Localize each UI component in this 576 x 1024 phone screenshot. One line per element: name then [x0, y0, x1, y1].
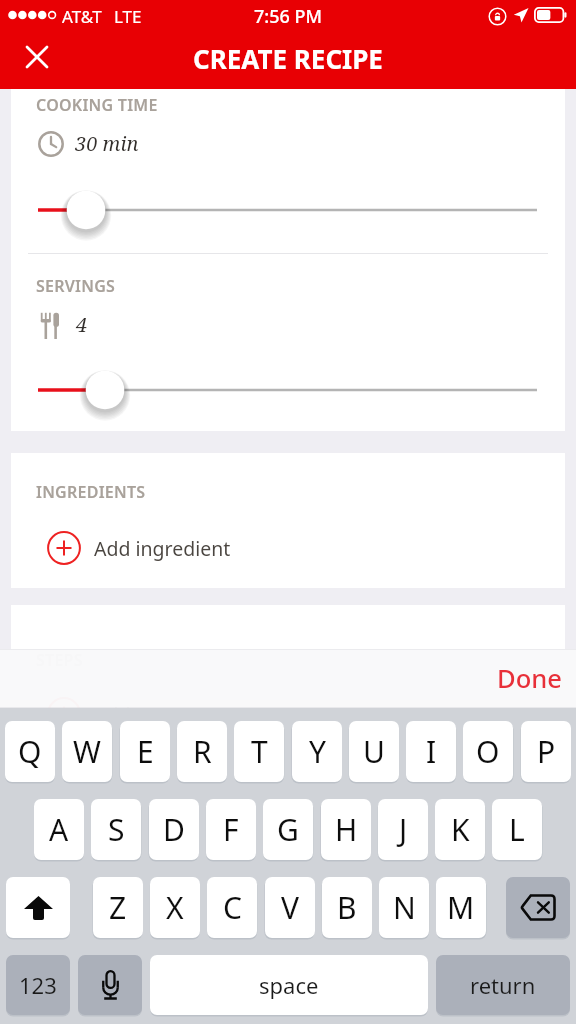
- staticText: C: [223, 887, 242, 928]
- button[interactable]: P: [521, 721, 571, 782]
- staticText: Done: [497, 661, 562, 696]
- button[interactable]: E: [120, 721, 170, 782]
- button[interactable]: Numbers: [6, 955, 70, 1015]
- staticText: 4: [76, 311, 88, 338]
- staticText: L: [509, 809, 525, 850]
- staticText: D: [163, 809, 185, 850]
- button[interactable]: T: [234, 721, 284, 782]
- staticText: COOKING TIME: [36, 94, 158, 116]
- staticText: A: [49, 809, 69, 850]
- button[interactable]: C: [207, 877, 257, 938]
- staticText: X: [166, 887, 184, 928]
- staticText: return: [470, 970, 536, 1000]
- button[interactable]: G: [263, 799, 313, 860]
- button[interactable]: A: [34, 799, 84, 860]
- staticText: INGREDIENTS: [36, 481, 146, 503]
- button[interactable]: S: [91, 799, 141, 860]
- staticText: R: [193, 731, 212, 772]
- button[interactable]: Y: [292, 721, 342, 782]
- staticText: CREATE RECIPE: [193, 41, 383, 76]
- button[interactable]: Add ingredient: [47, 522, 231, 574]
- staticText: K: [451, 809, 470, 850]
- staticText: space: [259, 970, 319, 1000]
- staticText: O: [476, 731, 500, 772]
- button[interactable]: Backspace: [506, 877, 570, 938]
- staticText: SERVINGS: [36, 275, 116, 297]
- button[interactable]: I: [406, 721, 456, 782]
- staticText: Add ingredient: [94, 535, 231, 562]
- staticText: 7:56 PM: [254, 4, 322, 29]
- staticText: S: [108, 809, 125, 850]
- button[interactable]: Z: [93, 877, 143, 938]
- button[interactable]: Close: [10, 33, 64, 81]
- staticText: Q: [18, 731, 42, 772]
- staticText: Add step: [94, 701, 175, 728]
- staticText: LTE: [114, 5, 142, 28]
- button[interactable]: space: [150, 955, 428, 1015]
- button[interactable]: N: [379, 877, 429, 938]
- button[interactable]: O: [463, 721, 513, 782]
- button[interactable]: Dictation: [78, 955, 142, 1015]
- staticText: P: [537, 731, 556, 772]
- button[interactable]: H: [321, 799, 371, 860]
- button[interactable]: K: [435, 799, 485, 860]
- staticText: H: [335, 809, 358, 850]
- staticText: T: [251, 731, 268, 772]
- button[interactable]: U: [349, 721, 399, 782]
- staticText: B: [337, 887, 357, 928]
- staticText: I: [426, 731, 437, 772]
- staticText: Y: [309, 731, 326, 772]
- staticText: G: [277, 809, 299, 850]
- staticText: 123: [19, 970, 57, 1000]
- staticText: F: [223, 809, 239, 850]
- staticText: N: [393, 887, 416, 928]
- button[interactable]: L: [492, 799, 542, 860]
- staticText: AT&T: [62, 5, 102, 28]
- button[interactable]: W: [62, 721, 112, 782]
- staticText: V: [281, 887, 299, 928]
- button[interactable]: Add step: [47, 688, 175, 740]
- button[interactable]: R: [177, 721, 227, 782]
- button[interactable]: M: [436, 877, 486, 938]
- staticText: M: [447, 887, 475, 928]
- button[interactable]: Shift: [6, 877, 70, 938]
- staticText: E: [137, 731, 154, 772]
- staticText: J: [399, 809, 408, 850]
- button[interactable]: Q: [5, 721, 55, 782]
- button[interactable]: D: [149, 799, 199, 860]
- staticText: Z: [109, 887, 127, 928]
- button[interactable]: B: [322, 877, 372, 938]
- staticText: W: [73, 731, 101, 772]
- button[interactable]: F: [206, 799, 256, 860]
- staticText: 30 min: [75, 130, 139, 157]
- button[interactable]: V: [265, 877, 315, 938]
- button[interactable]: J: [378, 799, 428, 860]
- button[interactable]: return: [436, 955, 570, 1015]
- button[interactable]: X: [150, 877, 200, 938]
- staticText: U: [363, 731, 385, 772]
- button[interactable]: Done: [497, 661, 562, 696]
